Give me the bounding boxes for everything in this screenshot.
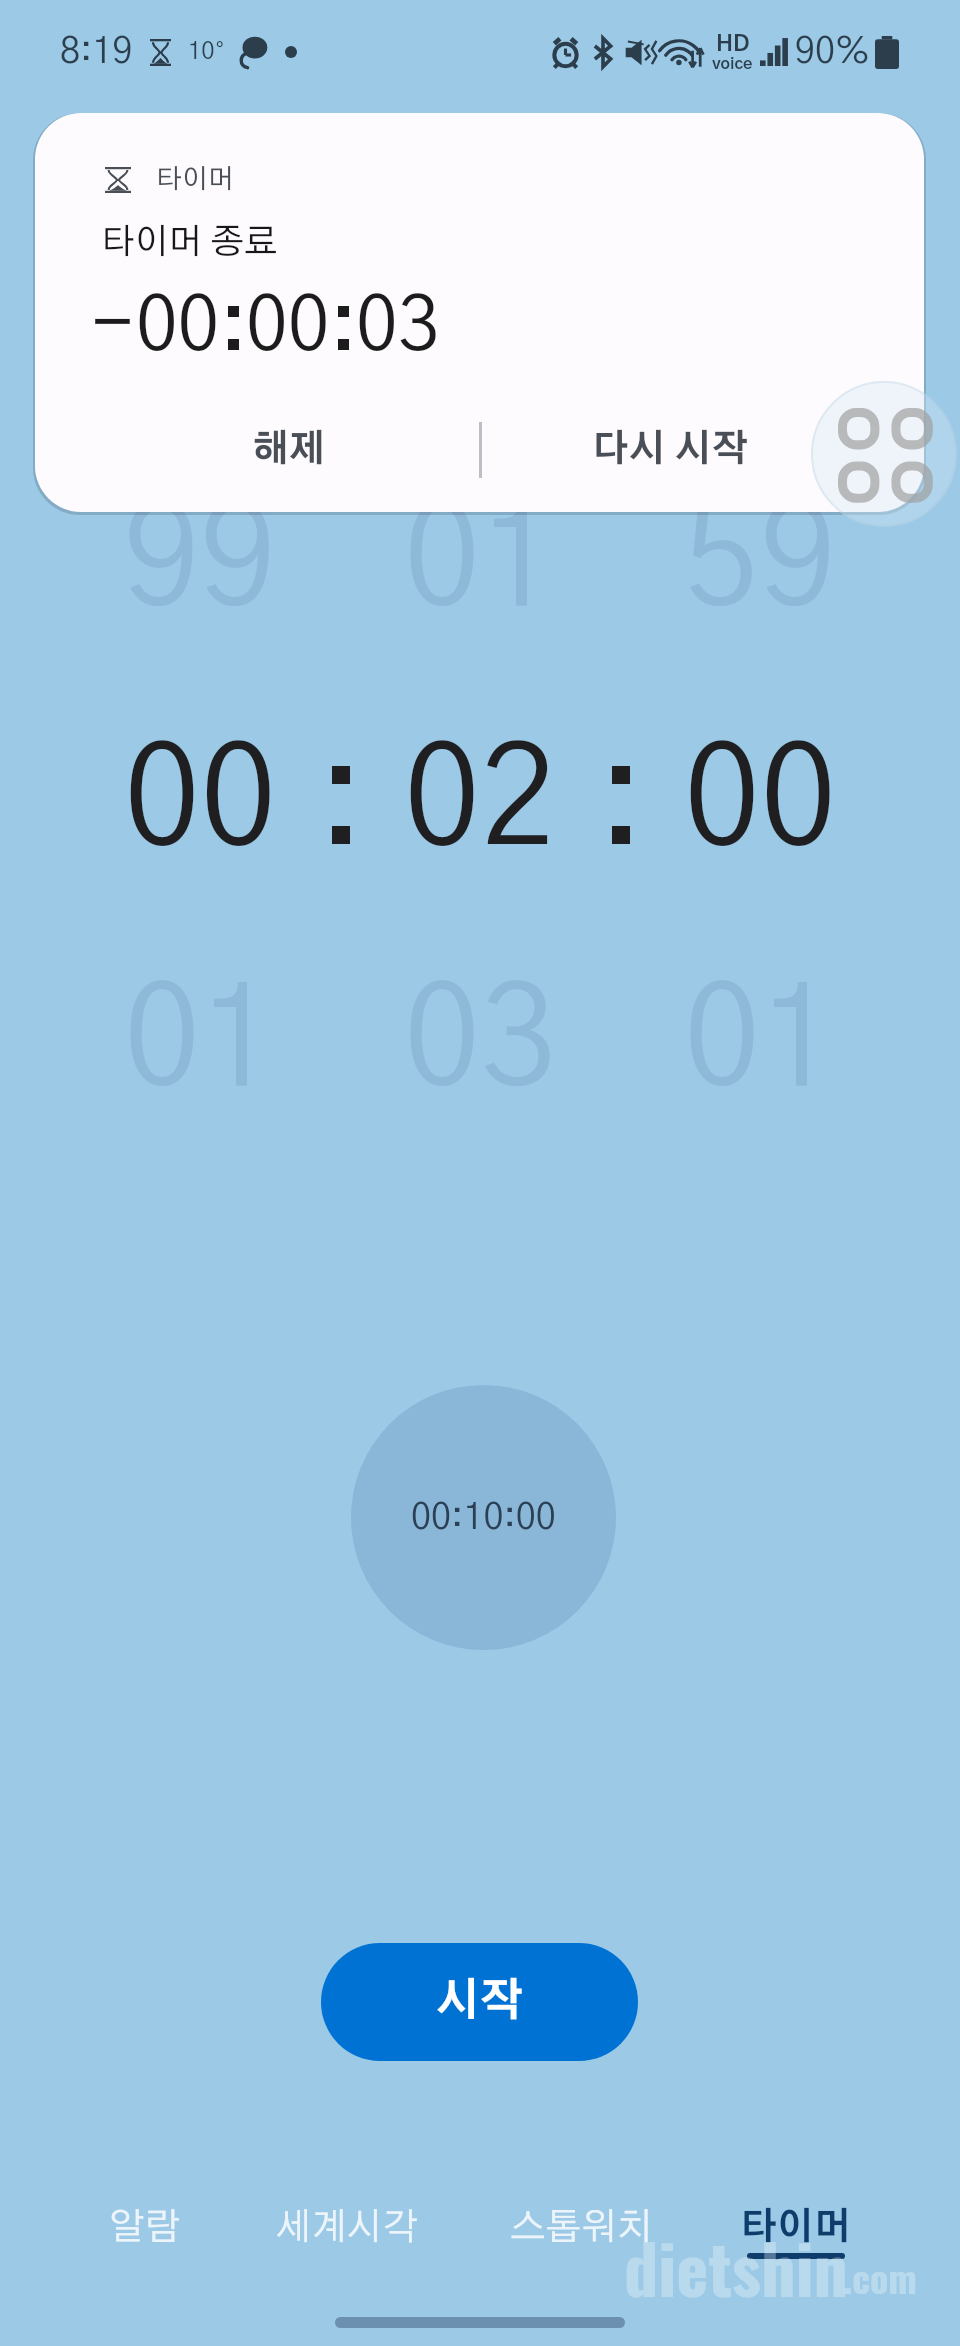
staticText: 시작 <box>436 1980 524 2024</box>
staticText: 세계시각 <box>276 2209 419 2246</box>
staticText: 00 <box>124 735 277 872</box>
staticText: HD <box>716 33 750 56</box>
button[interactable]: 타이머 <box>685 2195 905 2291</box>
staticText: 타이머 <box>740 2209 851 2246</box>
button[interactable]: 시작 <box>321 1943 638 2061</box>
staticText: −00 <box>89 290 220 365</box>
staticText: 알람 <box>109 2209 181 2246</box>
staticText: 03 <box>404 975 557 1112</box>
staticText: 스톱워치 <box>510 2209 653 2246</box>
staticText: 타이머 종료 <box>101 225 278 260</box>
staticText: 02 <box>404 735 557 872</box>
button[interactable]: 00:10:00 <box>351 1385 616 1650</box>
staticText: 00 <box>246 290 330 365</box>
staticText: dietshin <box>624 2216 848 2317</box>
staticText: 8:19 <box>60 34 133 70</box>
staticText: 00 <box>684 735 837 872</box>
staticText: .com <box>843 2249 917 2305</box>
button[interactable]: 알람 <box>35 2195 255 2291</box>
staticText: 다시 시작 <box>592 431 749 468</box>
staticText: 99 <box>124 495 277 632</box>
button[interactable]: 해제 <box>80 402 498 496</box>
staticText: 59 <box>684 495 837 632</box>
staticText: 01 <box>684 975 837 1112</box>
button[interactable]: Pop-up view <box>811 381 957 527</box>
staticText: 03 <box>356 290 440 365</box>
staticText: voice <box>712 56 753 72</box>
button[interactable]: 스톱워치 <box>471 2195 691 2291</box>
staticText: 90% <box>795 34 870 70</box>
staticText: 00:10:00 <box>411 1500 556 1536</box>
staticText: 해제 <box>252 431 326 468</box>
staticText: 01 <box>124 975 277 1112</box>
staticText: 10° <box>188 40 225 64</box>
button[interactable]: 세계시각 <box>237 2195 457 2291</box>
button[interactable]: 다시 시작 <box>461 402 879 496</box>
staticText: 타이머 <box>156 166 234 193</box>
staticText: 01 <box>404 495 557 632</box>
